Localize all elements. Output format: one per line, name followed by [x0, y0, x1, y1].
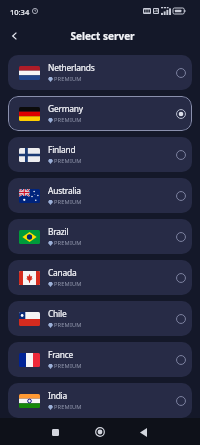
button[interactable]: Back — [2, 24, 26, 48]
button[interactable]: Australia — [8, 178, 192, 213]
staticText: India — [48, 390, 68, 401]
staticText: PREMIUM — [54, 403, 82, 411]
staticText: PREMIUM — [54, 280, 82, 288]
staticText: Brazil — [48, 226, 69, 237]
staticText: PREMIUM — [54, 75, 82, 83]
button[interactable]: India — [8, 383, 192, 418]
button[interactable]: Recent apps — [44, 421, 66, 443]
staticText: Australia — [48, 185, 81, 196]
staticText: 10:34 — [10, 7, 30, 17]
staticText: PREMIUM — [54, 321, 82, 329]
staticText: Netherlands — [48, 62, 95, 73]
button[interactable]: Home — [89, 421, 111, 443]
staticText: France — [48, 349, 74, 360]
staticText: Select server — [70, 29, 135, 43]
staticText: Canada — [48, 267, 77, 278]
button[interactable]: Netherlands — [8, 55, 192, 90]
button[interactable]: Germany — [8, 96, 192, 131]
staticText: PREMIUM — [54, 198, 82, 206]
button[interactable]: Back — [132, 421, 154, 443]
button[interactable]: Brazil — [8, 219, 192, 254]
staticText: PREMIUM — [54, 239, 82, 247]
button[interactable]: Finland — [8, 137, 192, 172]
button[interactable]: Canada — [8, 260, 192, 295]
staticText: Germany — [48, 103, 83, 114]
staticText: PREMIUM — [54, 116, 82, 124]
button[interactable]: France — [8, 342, 192, 377]
staticText: PREMIUM — [54, 157, 82, 165]
staticText: Finland — [48, 144, 76, 155]
staticText: Chile — [48, 308, 67, 319]
button[interactable]: Chile — [8, 301, 192, 336]
staticText: PREMIUM — [54, 362, 82, 370]
